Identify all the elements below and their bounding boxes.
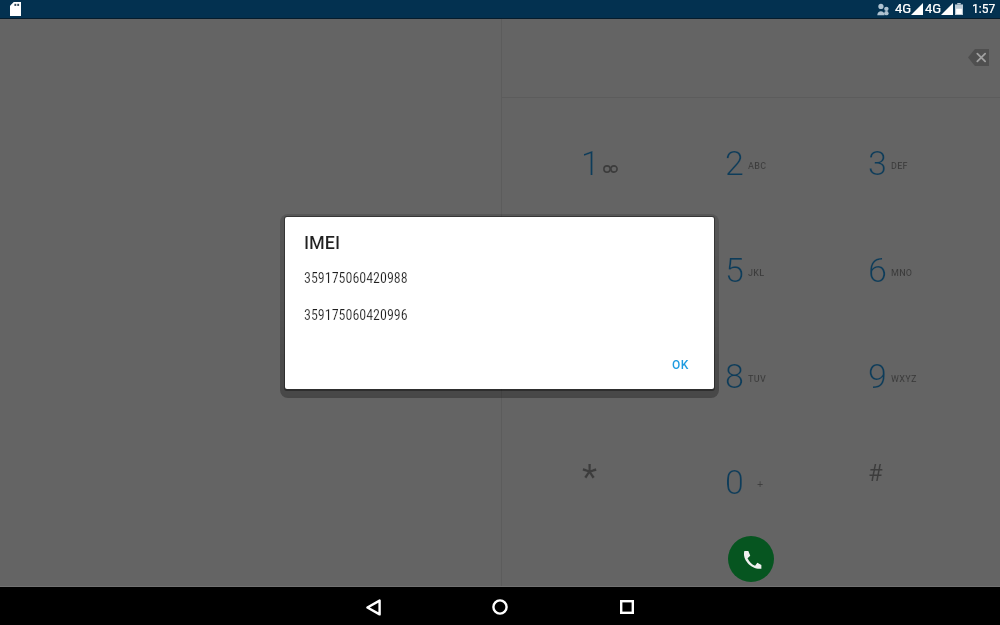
- button[interactable]: Delete: [958, 37, 998, 77]
- staticText: 1:57: [972, 2, 996, 16]
- staticText: TUV: [748, 374, 767, 385]
- staticText: 359175060420988: [304, 270, 408, 286]
- button[interactable]: Recent apps: [603, 588, 651, 625]
- staticText: 0: [725, 462, 744, 502]
- button[interactable]: 0: [683, 436, 815, 524]
- button[interactable]: Call: [728, 536, 774, 582]
- button[interactable]: 9: [826, 330, 958, 418]
- staticText: MNO: [891, 268, 913, 279]
- staticText: #: [868, 459, 883, 487]
- staticText: 359175060420996: [304, 307, 408, 323]
- button[interactable]: 2: [683, 117, 815, 205]
- staticText: 7: [581, 356, 600, 396]
- staticText: JKL: [748, 268, 765, 279]
- staticText: 1: [581, 143, 600, 183]
- button[interactable]: 7: [539, 330, 671, 418]
- staticText: IMEI: [304, 232, 341, 253]
- staticText: DEF: [891, 161, 908, 172]
- staticText: *: [582, 457, 598, 498]
- button[interactable]: 6: [826, 224, 958, 312]
- staticText: 3: [868, 143, 887, 183]
- staticText: 4G: [925, 1, 942, 16]
- staticText: 4G: [895, 1, 912, 16]
- staticText: 8: [725, 356, 744, 396]
- staticText: 6: [868, 250, 887, 290]
- button[interactable]: 5: [683, 224, 815, 312]
- button[interactable]: 3: [826, 117, 958, 205]
- button[interactable]: OK: [659, 348, 701, 382]
- button[interactable]: 8: [683, 330, 815, 418]
- staticText: OK: [672, 358, 689, 372]
- staticText: 2: [725, 143, 744, 183]
- staticText: 9: [868, 356, 887, 396]
- staticText: 5: [725, 250, 744, 290]
- staticText: +: [757, 478, 764, 491]
- staticText: ABC: [748, 161, 767, 172]
- button[interactable]: Home: [476, 588, 524, 625]
- button[interactable]: 1: [539, 117, 671, 205]
- staticText: WXYZ: [891, 374, 917, 385]
- button[interactable]: Back: [349, 588, 397, 625]
